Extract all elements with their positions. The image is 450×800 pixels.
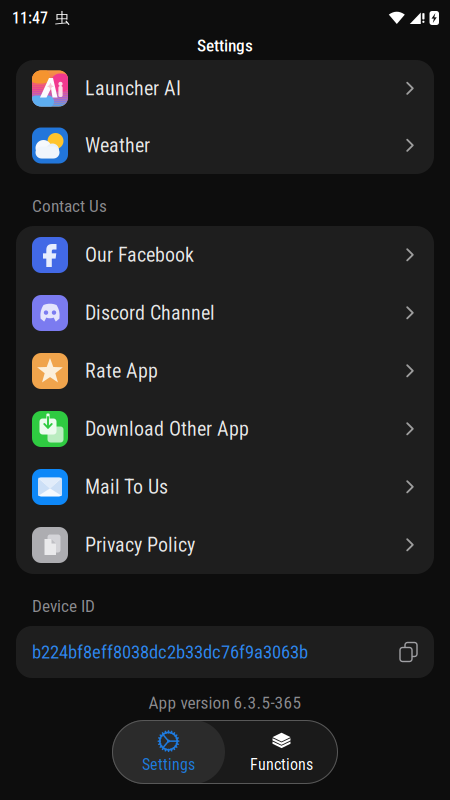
button[interactable]: Privacy Policy [16,516,434,574]
button[interactable]: Download Other App [16,400,434,458]
staticText: App version 6.3.5-365 [148,693,301,713]
staticText: Contact Us [32,196,107,216]
staticText: Settings [197,35,253,56]
staticText: Privacy Policy [85,533,195,557]
staticText: 虫 [55,9,70,27]
staticText: Functions [250,755,313,774]
staticText: Discord Channel [85,301,215,325]
button[interactable]: Discord Channel [16,284,434,342]
button[interactable]: Rate App [16,342,434,400]
button[interactable]: Functions [225,720,338,784]
staticText: Our Facebook [85,243,194,267]
staticText: 11:47 [12,9,48,27]
button[interactable]: Mail To Us [16,458,434,516]
button[interactable]: Weather [16,117,434,174]
staticText: Device ID [32,596,95,616]
staticText: Download Other App [85,417,249,441]
staticText: Mail To Us [85,475,168,499]
staticText: b224bf8eff8038dc2b33dc76f9a3063b [32,641,308,663]
button[interactable]: Settings [112,720,225,784]
button[interactable]: Copy Device ID [398,641,419,662]
button[interactable]: Our Facebook [16,226,434,284]
staticText: Weather [85,134,150,157]
staticText: Rate App [85,359,158,383]
staticText: Launcher AI [85,77,181,100]
staticText: Settings [142,755,195,774]
button[interactable]: Launcher AI [16,60,434,117]
